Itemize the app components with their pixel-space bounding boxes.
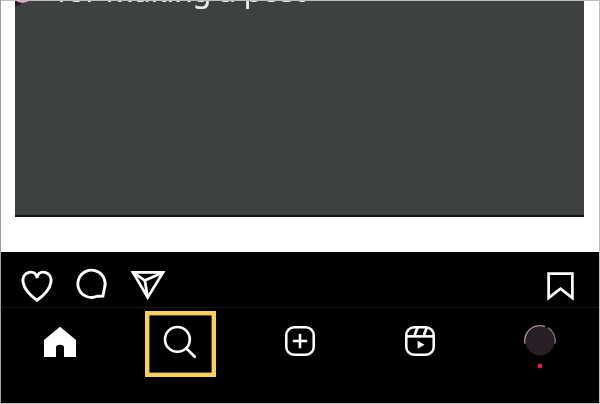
button[interactable]: Comment xyxy=(71,263,115,307)
button[interactable]: Like xyxy=(15,263,59,307)
button[interactable]: Search xyxy=(156,318,204,366)
button[interactable]: Reels xyxy=(396,317,444,365)
button[interactable]: Share xyxy=(126,260,170,304)
button[interactable]: Save xyxy=(538,263,582,307)
button[interactable]: Home xyxy=(36,318,84,366)
button[interactable]: Profile xyxy=(524,325,556,357)
button[interactable]: Create xyxy=(276,317,324,365)
staticText: for making a post xyxy=(57,0,306,11)
